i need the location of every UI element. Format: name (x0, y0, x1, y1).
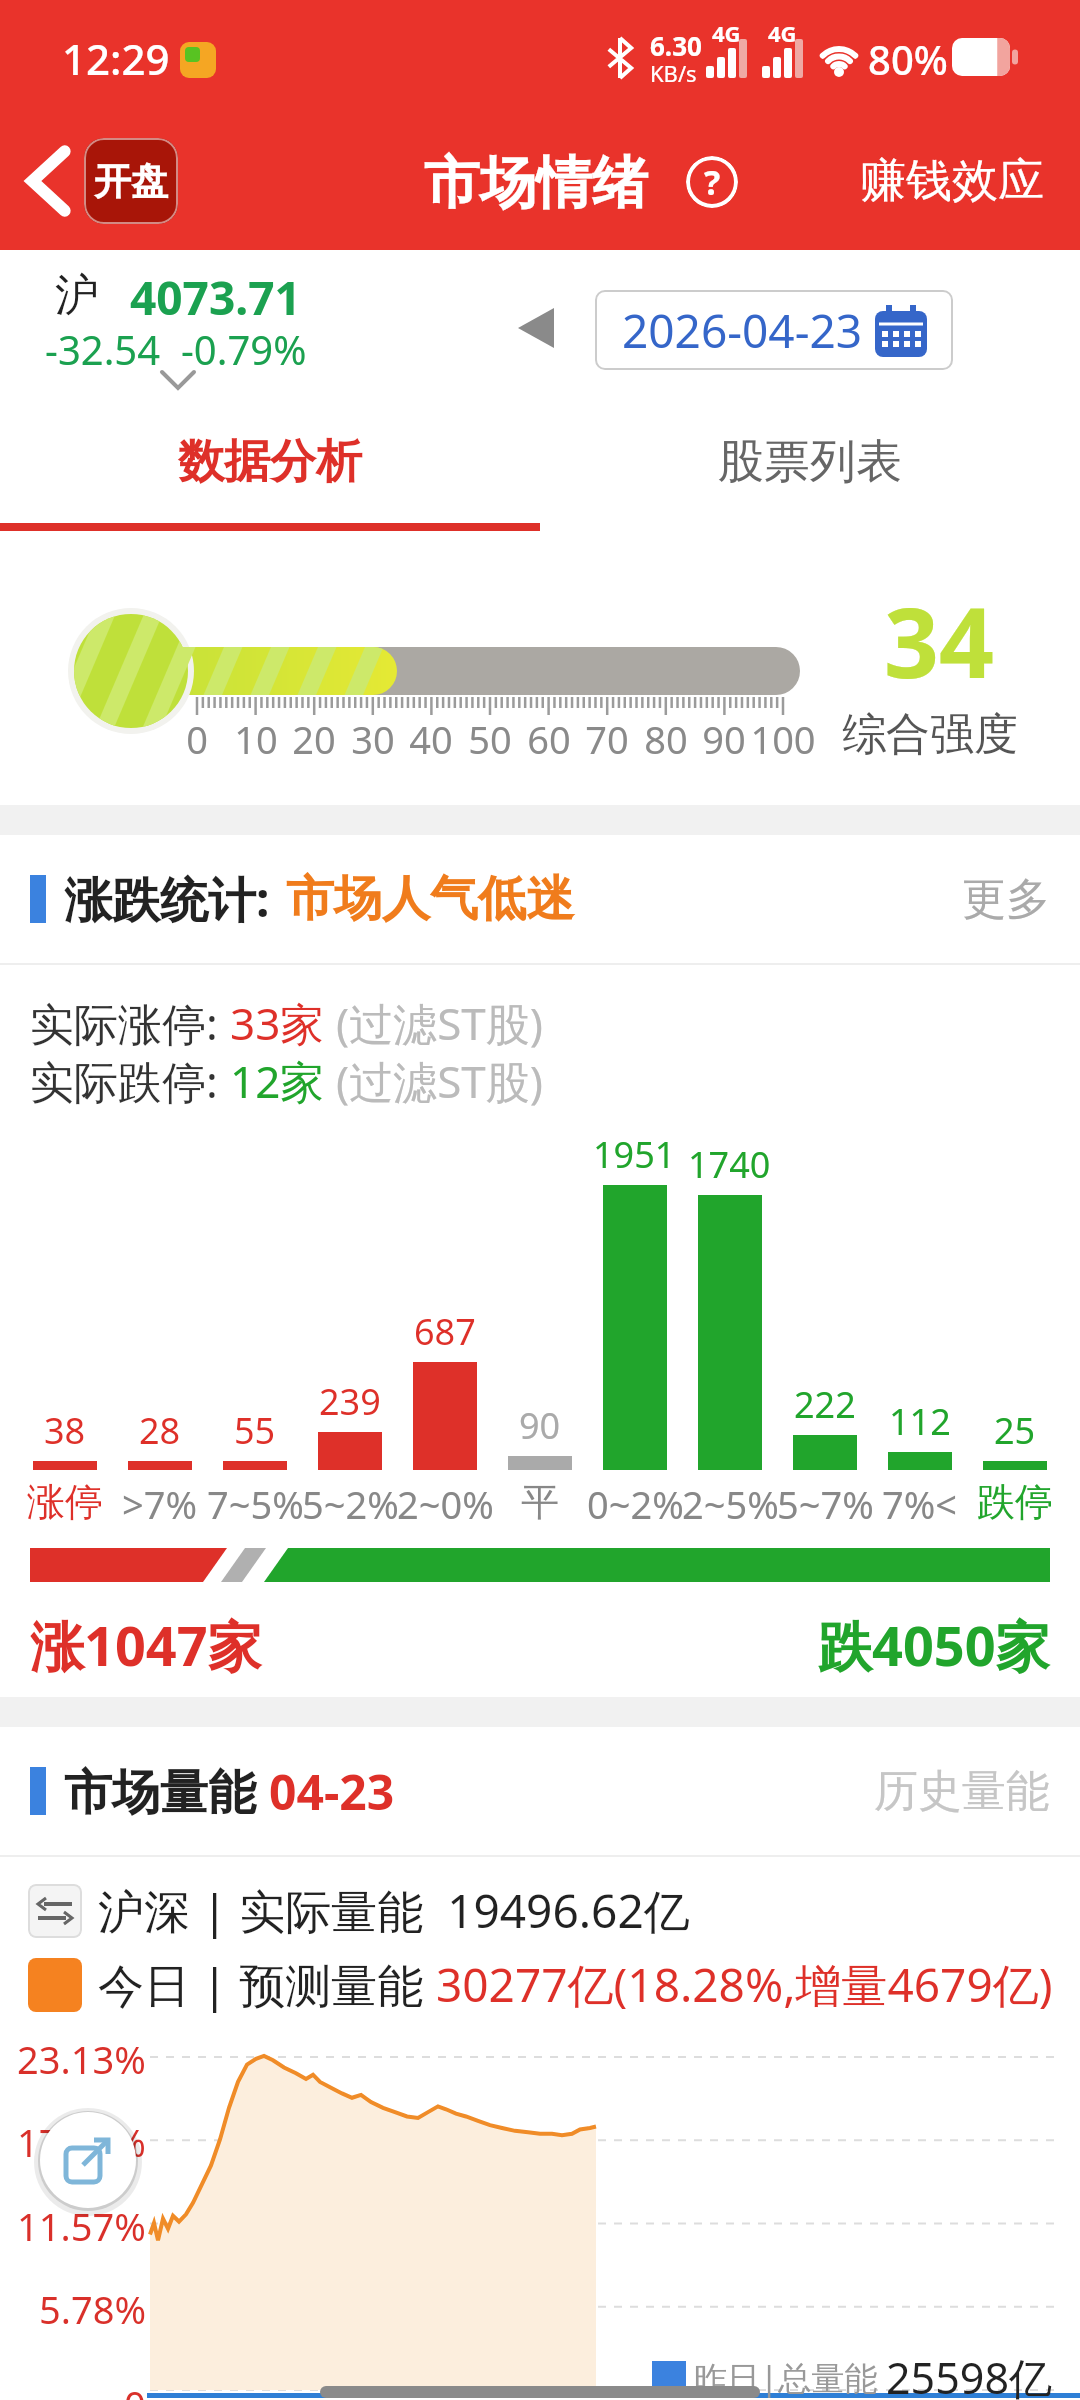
staticText: (过滤ST股) (336, 993, 544, 1053)
staticText: 昨日|总量能 (694, 2355, 886, 2400)
staticText: 实际跌停: (30, 1051, 230, 1111)
staticText: 涨跌统计: (64, 866, 270, 932)
staticText: 0~2% (587, 1478, 682, 1530)
staticText: 40 (381, 713, 481, 765)
staticText: 25598亿 (886, 2348, 1052, 2400)
staticText: 70 (557, 713, 657, 765)
staticText: 239 (319, 1377, 381, 1426)
staticText: 沪深 | 实际量能 19496.62亿 (98, 1879, 690, 1942)
button[interactable] (40, 2112, 136, 2208)
staticText: 1951 (593, 1130, 676, 1179)
staticText: 实际涨停: (30, 993, 230, 1053)
button[interactable]: 2026-04-23 (595, 290, 953, 370)
staticText: 涨停 (27, 1478, 103, 1526)
staticText: 2~0% (397, 1478, 492, 1530)
staticText: 沪 (55, 268, 99, 323)
staticText: 90 (674, 713, 774, 765)
staticText: KB/s (650, 58, 697, 88)
staticText: 55 (234, 1406, 276, 1455)
staticText: 12家 (230, 1051, 336, 1111)
button[interactable]: 更多 (962, 872, 1080, 927)
staticText: 股票列表 (718, 433, 902, 491)
staticText: 34 (884, 575, 994, 706)
staticText: 4G (768, 18, 797, 48)
staticText: 17.35% (17, 2116, 146, 2168)
staticText: 60 (499, 713, 599, 765)
staticText: 100 (733, 713, 833, 765)
staticText: 5~7% (777, 1478, 872, 1530)
staticText: (过滤ST股) (336, 1051, 544, 1111)
staticText: 0 (124, 2378, 146, 2400)
staticText: 跌4050家 (818, 1608, 1050, 1682)
staticText: 更多 (962, 872, 1050, 927)
staticText: 33家 (230, 993, 336, 1053)
staticText: 90 (519, 1401, 561, 1450)
staticText: 10 (206, 713, 306, 765)
staticText: 12:29 (62, 30, 170, 87)
staticText: 112 (889, 1397, 951, 1446)
staticText: 综合强度 (842, 707, 1018, 762)
staticText: 跌停 (977, 1478, 1053, 1526)
staticText: 1740 (688, 1140, 771, 1189)
button[interactable] (22, 142, 74, 220)
staticText: 7~5% (207, 1478, 302, 1530)
staticText: 数据分析 (178, 433, 362, 491)
staticText: 25 (994, 1406, 1036, 1455)
staticText: 30277亿(18.28%,增量4679亿) (436, 1953, 1053, 2016)
staticText: 涨1047家 (30, 1608, 262, 1682)
staticText: 80% (868, 32, 948, 86)
staticText: 赚钱效应 (860, 152, 1044, 210)
staticText: ? (704, 159, 721, 205)
staticText: 开盘 (94, 158, 168, 205)
staticText: 平 (521, 1478, 559, 1526)
button[interactable]: ? (686, 156, 738, 208)
button[interactable]: 数据分析 (0, 405, 540, 535)
staticText: 6.30 (650, 28, 702, 63)
staticText: 历史量能 (874, 1764, 1050, 1819)
staticText: 今日 | 预测量能 (98, 1953, 436, 2016)
staticText: 市场情绪 (424, 148, 648, 219)
button[interactable]: 历史量能 (874, 1764, 1080, 1819)
staticText: -32.54 -0.79% (45, 322, 307, 376)
staticText: 市场量能 (64, 1758, 269, 1824)
staticText: 0 (147, 713, 247, 765)
staticText: 30 (323, 713, 423, 765)
staticText: 5~2% (302, 1478, 397, 1530)
staticText: 20 (264, 713, 364, 765)
staticText: 28 (139, 1406, 181, 1455)
staticText: 2026-04-23 (622, 299, 863, 362)
staticText: 4G (712, 18, 741, 48)
staticText: 4073.71 (130, 266, 301, 329)
button[interactable]: 赚钱效应 (860, 146, 1060, 216)
staticText: 04-23 (269, 1759, 395, 1824)
button[interactable]: 开盘 (84, 138, 178, 224)
staticText: 222 (794, 1380, 856, 1429)
staticText: 687 (414, 1307, 476, 1356)
button[interactable]: 股票列表 (540, 405, 1080, 535)
staticText: 23.13% (17, 2033, 146, 2085)
staticText: 11.57% (17, 2200, 146, 2252)
staticText: >7% (122, 1478, 198, 1530)
staticText: 38 (44, 1406, 86, 1455)
staticText: 7%< (882, 1478, 958, 1530)
staticText: 市场人气低迷 (286, 869, 574, 929)
staticText: 5.78% (39, 2283, 146, 2335)
staticText: 80 (616, 713, 716, 765)
staticText: 50 (440, 713, 540, 765)
staticText: 2~5% (682, 1478, 777, 1530)
